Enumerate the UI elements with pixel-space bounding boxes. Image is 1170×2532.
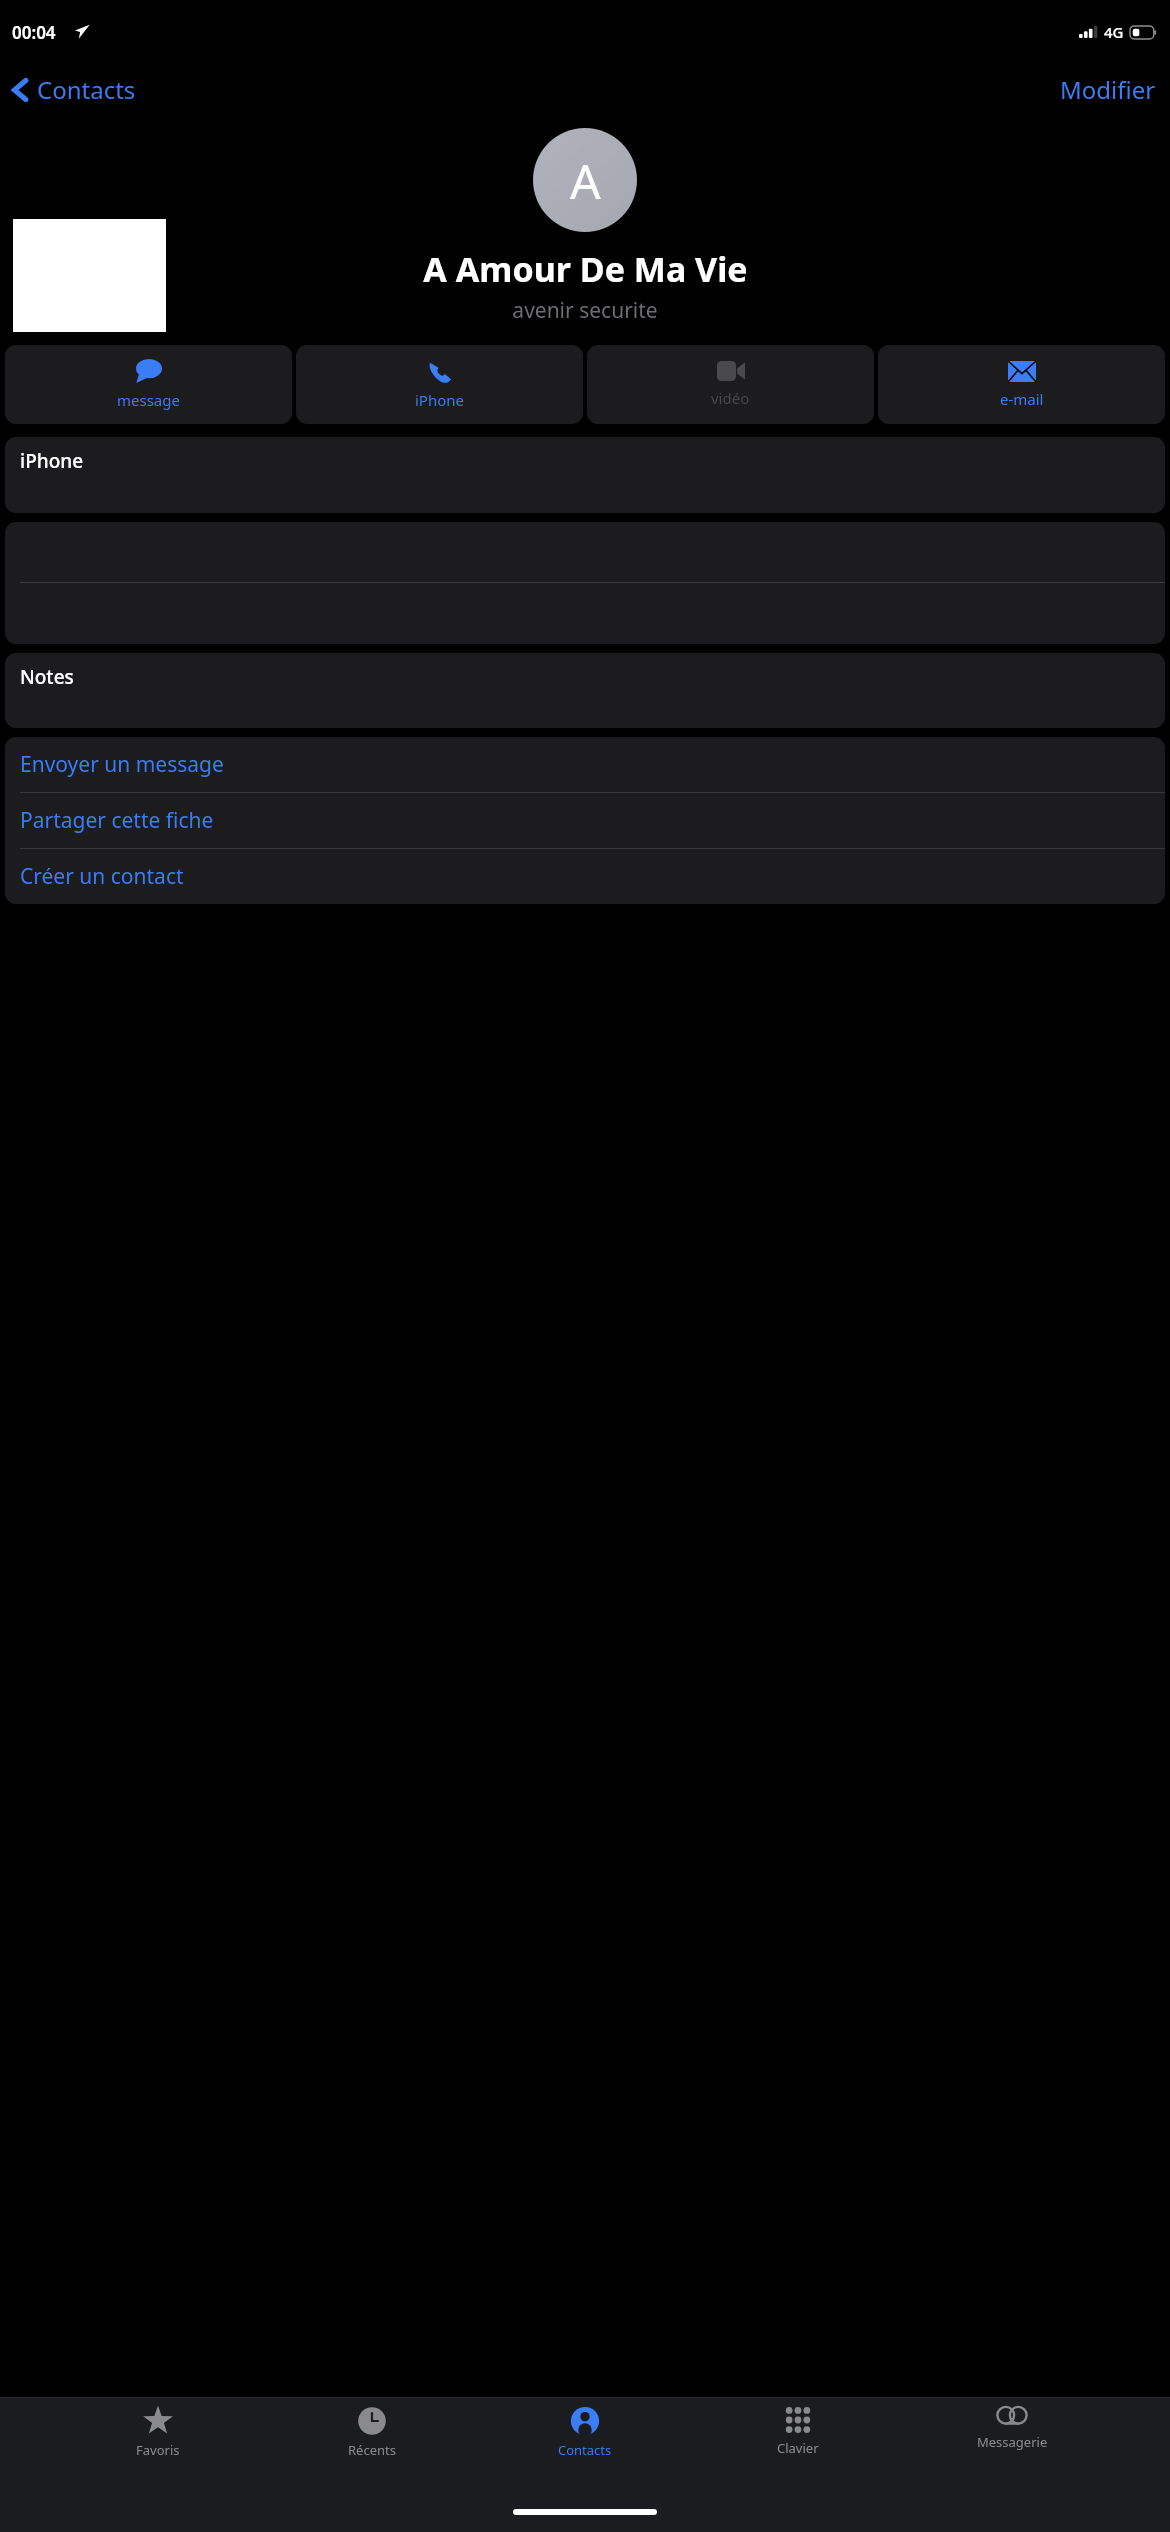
- button[interactable]: Notes: [5, 653, 1165, 728]
- button[interactable]: e-mail: [878, 345, 1165, 424]
- staticText: Messagerie: [977, 2433, 1048, 2451]
- staticText: iPhone: [20, 448, 84, 474]
- staticText: Contacts: [37, 73, 136, 106]
- staticText: vidéo: [711, 388, 750, 408]
- staticText: Clavier: [777, 2439, 819, 2457]
- button[interactable]: iPhone: [296, 345, 583, 424]
- staticText: 4G: [1104, 22, 1124, 42]
- staticText: Modifier: [1060, 73, 1156, 106]
- staticText: 00:04: [12, 21, 56, 44]
- staticText: A: [570, 148, 601, 213]
- staticText: e-mail: [1000, 389, 1044, 409]
- staticText: A Amour De Ma Vie: [423, 246, 748, 292]
- button[interactable]: A: [533, 128, 637, 232]
- staticText: Notes: [20, 664, 74, 690]
- button[interactable]: Envoyer un message: [5, 737, 1165, 792]
- button[interactable]: Partager cette fiche: [5, 793, 1165, 848]
- button[interactable]: Récents: [317, 2406, 427, 2459]
- button[interactable]: Favoris: [103, 2406, 213, 2459]
- staticText: Récents: [348, 2441, 396, 2459]
- button[interactable]: Contacts: [530, 2406, 640, 2459]
- button[interactable]: Clavier: [743, 2406, 853, 2457]
- button[interactable]: vidéo: [587, 345, 874, 424]
- button[interactable]: Modifier: [1046, 65, 1170, 114]
- staticText: message: [117, 390, 180, 410]
- button[interactable]: message: [5, 345, 292, 424]
- staticText: Envoyer un message: [20, 750, 224, 779]
- staticText: Créer un contact: [20, 862, 184, 891]
- button[interactable]: iPhone: [5, 437, 1165, 513]
- staticText: iPhone: [415, 390, 465, 410]
- staticText: Contacts: [558, 2441, 612, 2459]
- button[interactable]: Créer un contact: [5, 849, 1165, 904]
- staticText: Favoris: [136, 2441, 180, 2459]
- staticText: avenir securite: [512, 296, 658, 325]
- staticText: Partager cette fiche: [20, 806, 214, 835]
- button[interactable]: Contacts: [0, 67, 148, 112]
- button[interactable]: Messagerie: [957, 2406, 1067, 2451]
